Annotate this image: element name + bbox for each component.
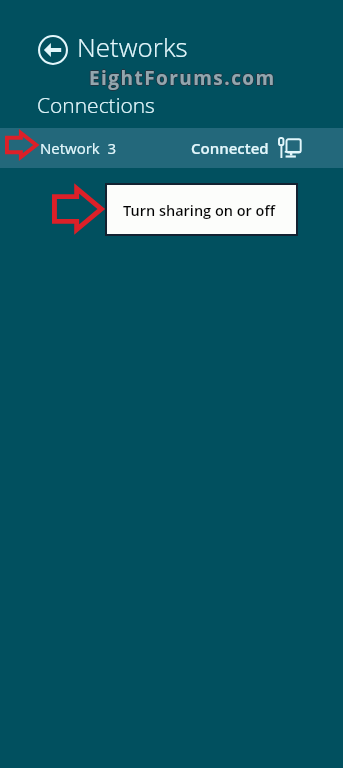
staticText: Connected: [191, 138, 269, 158]
staticText: Network 3: [40, 138, 117, 158]
button[interactable]: Back: [38, 35, 68, 65]
button[interactable]: Network 3: [0, 128, 343, 168]
staticText: EightForums.com: [90, 65, 277, 91]
staticText: EightForums.com: [88, 65, 275, 91]
staticText: Networks: [77, 29, 188, 64]
staticText: Turn sharing on or off: [123, 201, 276, 221]
staticText: EightForums.com: [89, 65, 276, 91]
staticText: EightForums.com: [89, 66, 276, 92]
staticText: Connections: [37, 91, 155, 120]
staticText: EightForums.com: [89, 64, 276, 90]
button[interactable]: Turn sharing on or off: [107, 185, 296, 234]
